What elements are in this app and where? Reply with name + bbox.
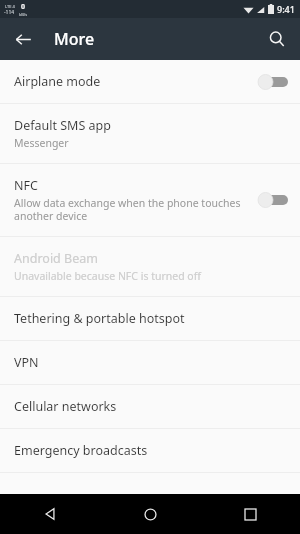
staticText: -114	[4, 9, 15, 16]
button[interactable]: Search	[262, 24, 292, 54]
button[interactable]: Cellular networks	[0, 385, 300, 428]
staticText: 9:41	[277, 3, 295, 15]
button[interactable]: Tethering & portable hotspot	[0, 297, 300, 340]
button[interactable]: Home	[100, 494, 200, 534]
staticText: Emergency broadcasts	[14, 442, 148, 459]
button[interactable]: Airplane mode	[0, 60, 300, 103]
staticText: 0	[21, 2, 26, 12]
button[interactable]: Android Beam	[0, 237, 300, 296]
button[interactable]: Toggle	[258, 192, 288, 208]
staticText: Airplane mode	[14, 73, 101, 90]
staticText: Android Beam	[14, 250, 98, 267]
staticText: Allow data exchange when the phone touch…	[14, 196, 241, 223]
button[interactable]: NFC	[0, 164, 300, 236]
button[interactable]: Emergency broadcasts	[0, 429, 300, 472]
button[interactable]: Default SMS app	[0, 104, 300, 163]
staticText: Cellular networks	[14, 398, 117, 415]
staticText: Unavailable because NFC is turned off	[14, 269, 201, 283]
staticText: VPN	[14, 354, 39, 371]
staticText: Default SMS app	[14, 117, 111, 134]
staticText: LTE 4	[5, 4, 15, 9]
button[interactable]: Toggle	[258, 74, 288, 90]
staticText: kB/s	[19, 12, 28, 17]
button[interactable]: Back	[8, 24, 38, 54]
staticText: Tethering & portable hotspot	[14, 310, 185, 327]
staticText: NFC	[14, 177, 38, 194]
button[interactable]: Back	[0, 494, 100, 534]
button[interactable]: Recent apps	[200, 494, 300, 534]
staticText: More	[54, 28, 95, 50]
staticText: Messenger	[14, 136, 69, 150]
button[interactable]: VPN	[0, 341, 300, 384]
